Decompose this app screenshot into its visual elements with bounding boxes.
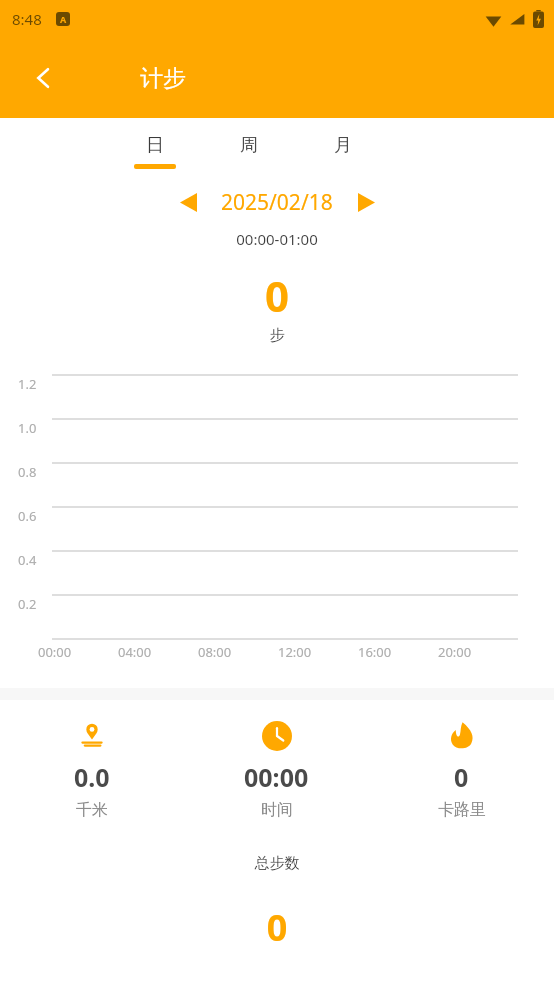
staticText: 0.2 — [18, 595, 37, 613]
staticText: 步 — [0, 326, 554, 345]
staticText: 千米 — [76, 800, 108, 820]
button[interactable]: 00:00 — [184, 720, 369, 820]
staticText: 20:00 — [438, 643, 472, 661]
staticText: 16:00 — [358, 643, 392, 661]
staticText: 0 — [454, 760, 469, 794]
staticText: 总步数 — [0, 854, 554, 873]
staticText: 8:48 — [12, 9, 42, 29]
staticText: 00:00 — [38, 643, 72, 661]
staticText: 04:00 — [118, 643, 152, 661]
button[interactable]: 日 — [134, 134, 176, 169]
staticText: 0.8 — [18, 463, 37, 481]
staticText: 月 — [334, 134, 352, 157]
staticText: 08:00 — [198, 643, 232, 661]
button[interactable]: Back — [22, 56, 66, 100]
staticText: 卡路里 — [438, 800, 486, 820]
staticText: 1.2 — [18, 375, 37, 393]
staticText: 0.6 — [18, 507, 37, 525]
staticText: 0.4 — [18, 551, 37, 569]
staticText: 日 — [146, 134, 164, 157]
staticText: 0.0 — [74, 760, 110, 794]
staticText: 0 — [0, 267, 554, 324]
staticText: A — [60, 13, 67, 25]
staticText: 0 — [0, 903, 554, 952]
button[interactable]: 月 — [322, 134, 364, 169]
button[interactable]: 2025/02/18 — [221, 188, 333, 217]
button[interactable]: Previous day — [171, 185, 205, 219]
staticText: 周 — [240, 134, 258, 157]
staticText: 时间 — [261, 800, 293, 820]
button[interactable]: 0 — [369, 720, 554, 820]
button[interactable]: Next day — [349, 185, 383, 219]
staticText: 1.0 — [18, 419, 37, 437]
staticText: 00:00-01:00 — [0, 229, 554, 249]
button[interactable]: 周 — [228, 134, 270, 169]
staticText: 计步 — [140, 64, 186, 93]
staticText: 12:00 — [278, 643, 312, 661]
staticText: 00:00 — [244, 760, 309, 794]
button[interactable]: 0.0 — [0, 720, 184, 820]
